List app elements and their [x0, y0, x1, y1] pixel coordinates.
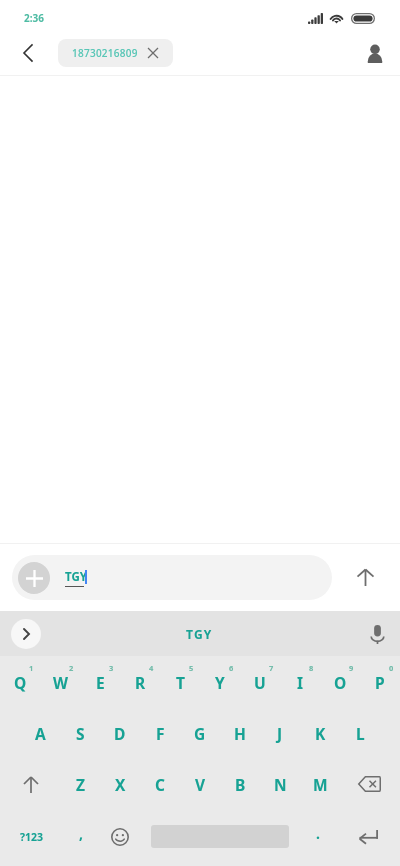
staticText: Q — [14, 672, 27, 693]
button[interactable]: B — [220, 759, 260, 809]
staticText: TGY — [65, 569, 87, 585]
staticText: G — [194, 723, 206, 744]
staticText: 2 — [69, 663, 74, 673]
button[interactable]: 5 — [189, 663, 194, 673]
button[interactable]: 3 — [109, 663, 114, 673]
button[interactable]: 2 — [69, 663, 74, 673]
staticText: U — [254, 672, 266, 693]
button[interactable]: Voice input — [362, 619, 392, 649]
button[interactable]: T — [160, 657, 200, 707]
button[interactable]: E — [80, 657, 120, 707]
button[interactable]: G — [180, 708, 220, 758]
button[interactable]: P — [360, 657, 400, 707]
staticText: 2:36 — [24, 11, 44, 25]
button[interactable]: ?123 — [2, 812, 62, 862]
button[interactable]: Back — [13, 38, 43, 68]
staticText: Y — [215, 672, 225, 693]
button[interactable]: R — [120, 657, 160, 707]
staticText: O — [334, 672, 347, 693]
staticText: S — [76, 723, 85, 744]
staticText: 8 — [309, 663, 314, 673]
button[interactable]: Enter — [340, 812, 396, 862]
button[interactable]: L — [340, 708, 380, 758]
button[interactable]: M — [300, 759, 340, 809]
staticText: 6 — [229, 663, 234, 673]
staticText: 1 — [29, 663, 34, 673]
button[interactable]: Emoji — [100, 812, 140, 862]
button[interactable]: Contact — [359, 37, 391, 69]
button[interactable]: 1 — [29, 663, 34, 673]
staticText: 0 — [389, 663, 394, 673]
staticText: T — [176, 672, 185, 693]
staticText: B — [235, 774, 246, 795]
button[interactable]: 7 — [269, 663, 274, 673]
button[interactable]: Y — [200, 657, 240, 707]
button[interactable]: 18730216809 — [58, 39, 173, 67]
button[interactable]: Z — [60, 759, 100, 809]
staticText: W — [53, 672, 68, 693]
staticText: E — [96, 672, 105, 693]
button[interactable]: Q — [0, 657, 40, 707]
staticText: R — [135, 672, 146, 693]
staticText: Z — [76, 774, 85, 795]
button[interactable]: TGY — [12, 555, 332, 600]
staticText: . — [316, 824, 320, 843]
staticText: P — [375, 672, 385, 693]
button[interactable]: H — [220, 708, 260, 758]
button[interactable]: 8 — [309, 663, 314, 673]
button[interactable]: K — [300, 708, 340, 758]
button[interactable]: Backspace — [338, 759, 400, 809]
button[interactable]: Shift — [0, 759, 62, 809]
button[interactable]: W — [40, 657, 80, 707]
button[interactable]: V — [180, 759, 220, 809]
button[interactable]: 0 — [389, 663, 394, 673]
button[interactable]: O — [320, 657, 360, 707]
staticText: 9 — [349, 663, 354, 673]
button[interactable]: U — [240, 657, 280, 707]
staticText: , — [79, 824, 83, 843]
button[interactable]: F — [140, 708, 180, 758]
staticText: 4 — [149, 663, 154, 673]
staticText: C — [155, 774, 165, 795]
button[interactable]: A — [20, 708, 60, 758]
button[interactable]: Expand toolbar — [11, 619, 41, 649]
staticText: 7 — [269, 663, 274, 673]
staticText: V — [195, 774, 206, 795]
button[interactable]: 9 — [349, 663, 354, 673]
staticText: H — [234, 723, 246, 744]
button[interactable]: Send — [348, 561, 382, 595]
button[interactable]: C — [140, 759, 180, 809]
staticText: 18730216809 — [72, 46, 138, 60]
button[interactable]: J — [260, 708, 300, 758]
button[interactable]: N — [260, 759, 300, 809]
staticText: I — [297, 672, 304, 693]
button[interactable]: D — [100, 708, 140, 758]
button[interactable]: X — [100, 759, 140, 809]
staticText: 3 — [109, 663, 114, 673]
button[interactable]: . — [300, 812, 336, 862]
button[interactable]: , — [64, 812, 98, 862]
staticText: X — [115, 774, 126, 795]
staticText: A — [35, 723, 46, 744]
button[interactable]: S — [60, 708, 100, 758]
staticText: M — [313, 774, 328, 795]
button[interactable]: 6 — [229, 663, 234, 673]
staticText: K — [315, 723, 326, 744]
staticText: D — [114, 723, 126, 744]
button[interactable]: I — [280, 657, 320, 707]
staticText: N — [274, 774, 287, 795]
button[interactable]: 4 — [149, 663, 154, 673]
button[interactable]: TGY — [186, 626, 213, 642]
staticText: L — [356, 723, 365, 744]
staticText: J — [277, 723, 283, 744]
staticText: F — [156, 723, 165, 744]
staticText: ?123 — [20, 830, 44, 844]
staticText: 5 — [189, 663, 194, 673]
